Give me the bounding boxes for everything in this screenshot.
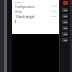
staticText: Configuration [15, 5, 35, 9]
button[interactable]: Check target [12, 14, 59, 19]
button[interactable]: Rotate [62, 20, 68, 24]
button[interactable]: Record indicator [63, 1, 68, 5]
button[interactable]: Configuration [12, 4, 59, 9]
staticText: Help [15, 10, 22, 14]
button[interactable]: Zoom in [62, 8, 68, 12]
staticText: Check target [16, 15, 35, 19]
button[interactable]: Zoom out [62, 14, 68, 18]
button[interactable]: Volume [62, 32, 68, 36]
button[interactable]: Help [12, 9, 59, 14]
staticText: Settings [14, 1, 22, 4]
button[interactable]: More [62, 38, 68, 42]
button[interactable]: Power [62, 26, 68, 30]
